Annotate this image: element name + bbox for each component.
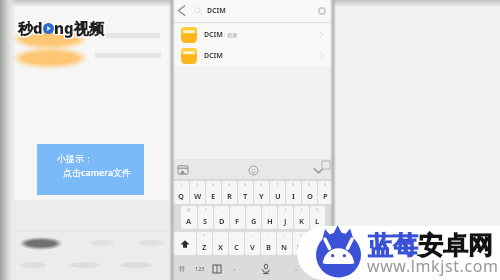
staticText: 4: [228, 182, 231, 187]
button[interactable]: ": [213, 232, 228, 255]
staticText: $: [316, 207, 319, 212]
staticText: W: [194, 191, 202, 201]
staticText: ;: [269, 207, 271, 212]
staticText: I: [292, 191, 295, 201]
button[interactable]: @: [181, 206, 197, 229]
button[interactable]: Back: [173, 0, 333, 22]
staticText: (: [285, 207, 287, 212]
button[interactable]: 5: [238, 181, 253, 204]
button[interactable]: 7: [270, 181, 285, 204]
staticText: E: [211, 191, 216, 201]
button[interactable]: ': [229, 232, 244, 255]
staticText: :: [252, 233, 254, 238]
staticText: U: [275, 191, 281, 201]
staticText: ng视频: [55, 19, 105, 39]
button[interactable]: 3: [206, 181, 221, 204]
button[interactable]: 小提示：: [37, 144, 144, 195]
staticText: !: [284, 233, 286, 238]
staticText: G: [251, 216, 257, 226]
staticText: www.lmkjst.com: [367, 255, 499, 277]
staticText: 3: [212, 182, 215, 187]
button[interactable]: ;: [262, 206, 277, 229]
button[interactable]: DCIM: [173, 45, 333, 66]
button[interactable]: 8: [286, 181, 301, 204]
staticText: ): [301, 207, 303, 212]
staticText: ng视频: [53, 17, 103, 37]
staticText: 1: [180, 182, 183, 187]
staticText: A: [186, 216, 192, 226]
button[interactable]: !: [277, 232, 292, 255]
button[interactable]: 1: [173, 181, 189, 204]
button[interactable]: ;: [261, 232, 276, 255]
staticText: ng视频: [53, 18, 103, 38]
staticText: K: [299, 216, 304, 226]
staticText: F: [235, 216, 240, 226]
button[interactable]: /: [198, 206, 213, 229]
button[interactable]: Voice input: [243, 257, 289, 280]
button[interactable]: Clear search: [314, 3, 330, 19]
staticText: 安卓网: [418, 230, 493, 261]
button[interactable]: Insert image: [176, 163, 190, 177]
staticText: DCIM: [207, 6, 226, 16]
button[interactable]: ): [294, 206, 309, 229]
button[interactable]: 6: [254, 181, 269, 204]
button[interactable]: 0: [318, 181, 333, 204]
staticText: L: [315, 216, 320, 226]
staticText: 秒d: [19, 19, 44, 39]
staticText: 6: [260, 182, 263, 187]
button[interactable]: _: [214, 206, 229, 229]
staticText: R: [227, 191, 232, 201]
staticText: 。: [295, 264, 301, 272]
staticText: 7: [276, 182, 279, 187]
button[interactable]: 9: [302, 181, 317, 204]
button[interactable]: DCIM: [173, 24, 333, 45]
button[interactable]: 123: [191, 257, 208, 280]
staticText: ng视频: [53, 19, 103, 39]
button[interactable]: :: [246, 206, 261, 229]
staticText: ：相册: [222, 32, 237, 38]
button[interactable]: Switch keyboard: [209, 257, 225, 280]
staticText: 秒d: [17, 18, 42, 38]
button[interactable]: Emoji: [246, 163, 260, 177]
staticText: ": [220, 233, 222, 238]
staticText: ': [236, 233, 237, 238]
staticText: J: [284, 216, 287, 226]
button[interactable]: Back: [173, 2, 190, 19]
button[interactable]: ?: [293, 232, 308, 255]
staticText: 蓝莓: [368, 230, 418, 261]
button[interactable]: -: [230, 206, 245, 229]
button[interactable]: :: [245, 232, 260, 255]
button[interactable]: 中/英: [307, 257, 333, 280]
button[interactable]: 符: [173, 257, 190, 280]
button[interactable]: 4: [222, 181, 237, 204]
button[interactable]: ，: [226, 257, 242, 280]
staticText: ng视频: [55, 17, 105, 37]
staticText: 9: [308, 182, 311, 187]
staticText: 小提示：: [57, 153, 93, 164]
staticText: D: [219, 216, 225, 226]
staticText: @: [187, 207, 191, 212]
staticText: ng视频: [55, 18, 105, 38]
staticText: 秒d: [18, 17, 43, 37]
button[interactable]: 。: [290, 257, 306, 280]
button[interactable]: 2: [190, 181, 205, 204]
button[interactable]: *: [197, 232, 212, 255]
staticText: 秒d: [18, 18, 43, 38]
staticText: H: [267, 216, 273, 226]
staticText: 0: [324, 182, 327, 187]
staticText: 符: [179, 265, 185, 273]
staticText: /: [205, 207, 207, 212]
button[interactable]: Shift: [173, 232, 196, 255]
staticText: 秒d: [17, 17, 42, 37]
staticText: O: [307, 191, 313, 201]
staticText: DCIM: [204, 51, 223, 61]
staticText: C: [234, 242, 239, 252]
button[interactable]: Backspace: [309, 232, 333, 255]
staticText: Y: [259, 191, 264, 201]
staticText: 点击camera文件: [63, 166, 132, 178]
staticText: DCIM: [204, 30, 223, 40]
button[interactable]: $: [310, 206, 325, 229]
button[interactable]: Hide keyboard: [311, 163, 325, 177]
button[interactable]: (: [278, 206, 293, 229]
staticText: Z: [202, 242, 207, 252]
